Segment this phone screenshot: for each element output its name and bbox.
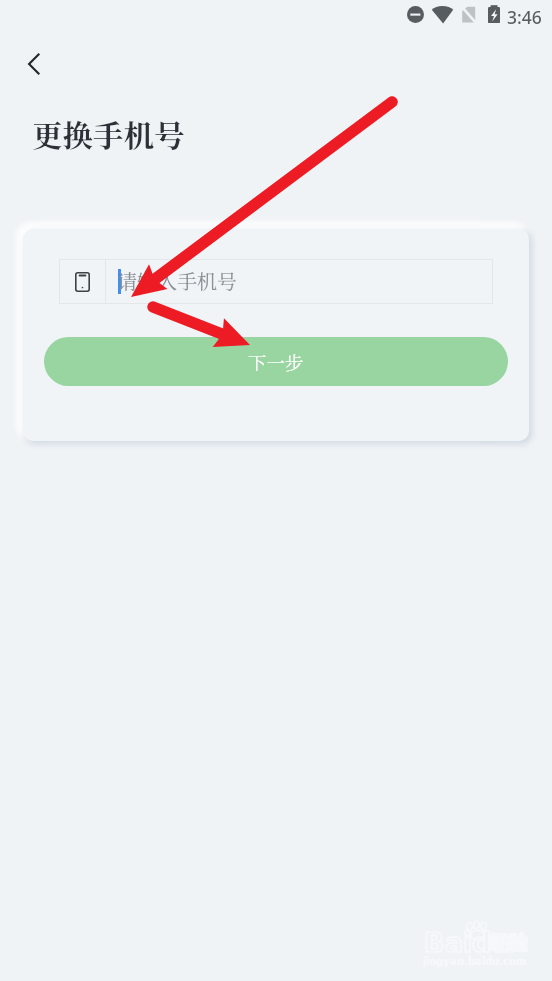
button[interactable]: Back [18, 47, 52, 81]
staticText: 3:46 [507, 5, 542, 29]
button[interactable]: 请输入手机号 [59, 259, 493, 304]
staticText: 更换手机号 [32, 112, 185, 156]
staticText: 请输入手机号 [117, 266, 237, 295]
button[interactable]: 下一步 [44, 337, 508, 386]
staticText: 下一步 [248, 349, 304, 376]
